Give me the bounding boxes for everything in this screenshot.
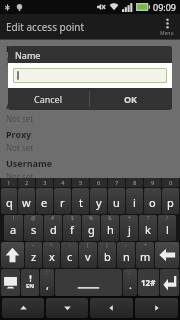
staticText: j [128,222,131,237]
button[interactable]: Key [1,242,24,268]
button[interactable]: o [144,188,161,214]
staticText: c [67,249,73,264]
staticText: i [133,195,136,210]
staticText: 8 [133,179,137,187]
staticText: % [89,215,94,222]
staticText: r [60,195,65,210]
button[interactable]: t [72,188,89,214]
staticText: 5 [79,179,83,187]
button[interactable]: r [54,188,71,214]
button[interactable]: 4 [54,178,71,187]
button[interactable]: / [158,215,176,241]
button[interactable]: i [126,188,143,214]
button[interactable] [13,68,167,83]
staticText: * [128,215,131,222]
staticText: l [166,222,169,237]
button[interactable]: : [40,269,54,296]
staticText: d [50,222,57,237]
staticText: ? [147,215,150,222]
button[interactable]: Left [90,298,133,318]
staticText: 2 [25,179,29,187]
button[interactable]: 0 [162,178,179,187]
button[interactable]: 5 [72,178,89,187]
staticText: s [31,222,37,237]
staticText: ) [106,242,108,249]
staticText: 12# [141,277,156,288]
staticText: @ [31,215,36,222]
button[interactable]: Keyboard settings [1,269,20,296]
button[interactable]: Right [135,298,178,318]
button[interactable]: # [44,215,62,241]
button[interactable]: - [61,242,78,268]
button[interactable]: Enter [160,269,179,296]
button[interactable]: 7 [108,178,125,187]
button[interactable]: Menu [154,14,180,40]
button[interactable]: ? [139,215,157,241]
button[interactable]: 6 [90,178,107,187]
button[interactable]: q [1,188,17,214]
staticText: Not set [6,142,34,153]
staticText: & [108,215,112,222]
button[interactable]: ( [79,242,97,268]
staticText: 3 [43,179,47,187]
button[interactable]: ! [4,215,23,241]
button[interactable]: ~ [25,242,42,268]
staticText: ~ [32,242,35,249]
button[interactable]: ^ [43,242,60,268]
staticText: q [6,195,13,210]
staticText: Proxy [6,128,32,140]
staticText: Not set [6,56,34,67]
staticText: Not set [6,171,34,178]
staticText: f [70,222,74,237]
staticText: OK [124,93,138,105]
button[interactable]: 9 [144,178,161,187]
button[interactable]: p [162,188,179,214]
button[interactable]: OK [90,88,172,110]
staticText: Name [15,49,41,61]
button[interactable]: Voice input [21,269,39,296]
button[interactable]: % [82,215,100,241]
staticText: 6 [97,179,101,187]
staticText: o [149,195,156,210]
staticText: EN [26,282,35,290]
button[interactable]: 12# [138,269,159,296]
staticText: 09:09 [153,1,177,13]
button[interactable]: 1 [1,178,17,187]
button[interactable]: @ [24,215,43,241]
button[interactable]: $ [63,215,81,241]
staticText: ; [129,269,131,276]
staticText: 1 [7,179,11,187]
button[interactable]: 8 [126,178,143,187]
button[interactable]: u [108,188,125,214]
button[interactable]: + [136,242,154,268]
button[interactable]: * [120,215,138,241]
button[interactable]: Key [155,242,179,268]
staticText: 0 [169,179,173,187]
button[interactable]: 3 [36,178,53,187]
staticText: k [145,222,151,237]
button[interactable]: & [101,215,119,241]
staticText: Menu [160,30,174,37]
button[interactable]: 2 [18,178,35,187]
staticText: 9 [151,179,155,187]
button[interactable]: Cancel [8,88,89,110]
button[interactable]: ; [123,269,137,296]
staticText: m [140,249,151,264]
staticText: - [69,242,71,249]
staticText: h [107,222,114,237]
staticText: + [144,242,147,249]
button[interactable]: y [90,188,107,214]
staticText: x [49,249,55,264]
button[interactable]: - [117,242,135,268]
staticText: ! [13,215,15,222]
staticText: e [41,195,48,210]
staticText: Not set [6,113,34,124]
button[interactable]: e [36,188,53,214]
staticText: a [10,222,17,237]
button[interactable]: Up [2,298,44,318]
staticText: : [46,269,48,276]
button[interactable]: ) [98,242,116,268]
button[interactable]: Down [46,298,88,318]
button[interactable]: Space [55,269,122,296]
button[interactable]: w [18,188,35,214]
